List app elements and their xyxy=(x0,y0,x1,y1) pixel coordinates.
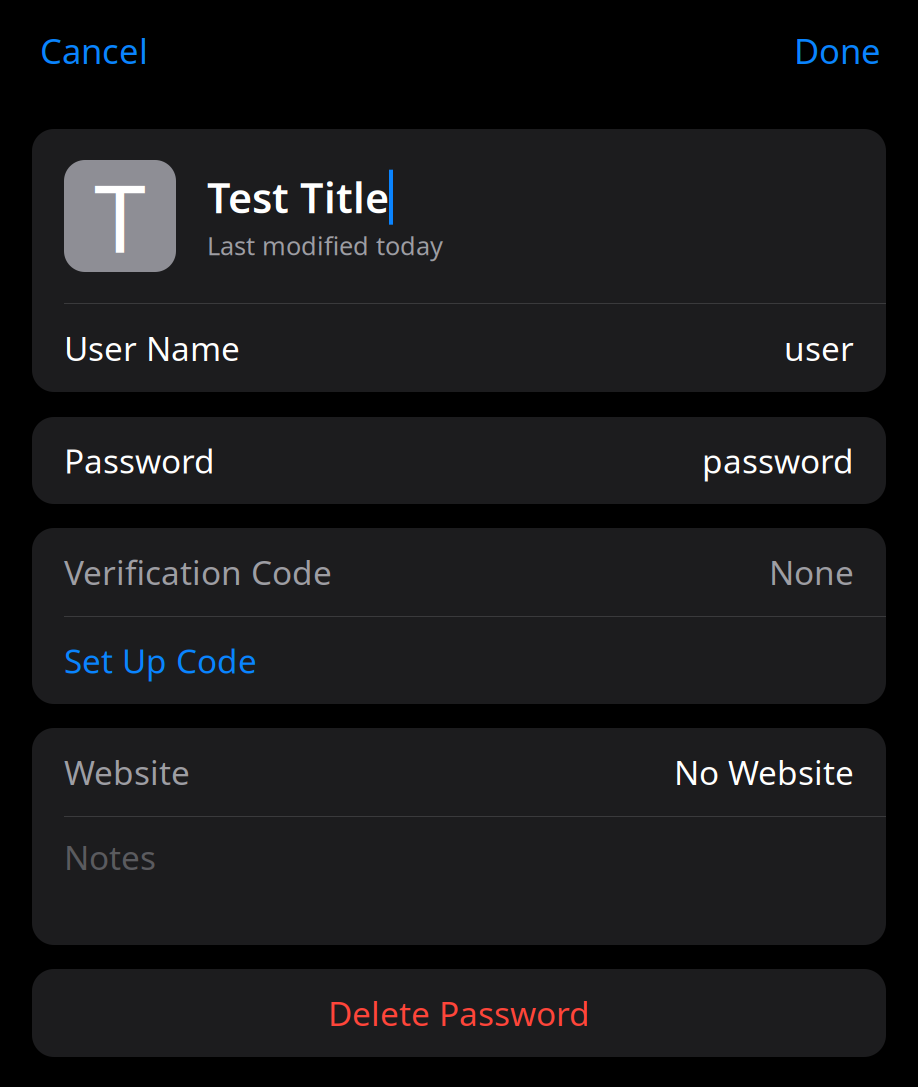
staticText: password xyxy=(702,438,854,483)
staticText: Verification Code xyxy=(64,550,332,594)
button[interactable]: Cancel xyxy=(34,17,154,83)
staticText: Test Title xyxy=(207,170,389,225)
button[interactable]: T xyxy=(32,129,886,303)
staticText: Website xyxy=(64,750,190,794)
staticText: None xyxy=(769,550,854,594)
staticText: Set Up Code xyxy=(64,638,257,683)
button[interactable]: User Name xyxy=(32,304,886,392)
staticText: Last modified today xyxy=(207,229,443,262)
staticText: User Name xyxy=(64,326,240,370)
button[interactable]: Verification Code xyxy=(32,528,886,616)
staticText: Password xyxy=(64,438,215,483)
button[interactable]: Done xyxy=(788,17,887,83)
staticText: No Website xyxy=(674,750,854,794)
staticText: Notes xyxy=(64,835,156,879)
button[interactable]: Set Up Code xyxy=(32,617,886,704)
staticText: Delete Password xyxy=(328,991,590,1035)
button[interactable]: Delete Password xyxy=(0,969,918,1057)
button[interactable]: Notes xyxy=(32,817,886,945)
button[interactable]: Password xyxy=(32,417,886,504)
staticText: T xyxy=(94,154,146,278)
staticText: Done xyxy=(794,27,881,73)
staticText: user xyxy=(784,326,854,370)
button[interactable]: Website xyxy=(32,728,886,816)
staticText: Cancel xyxy=(40,27,148,73)
